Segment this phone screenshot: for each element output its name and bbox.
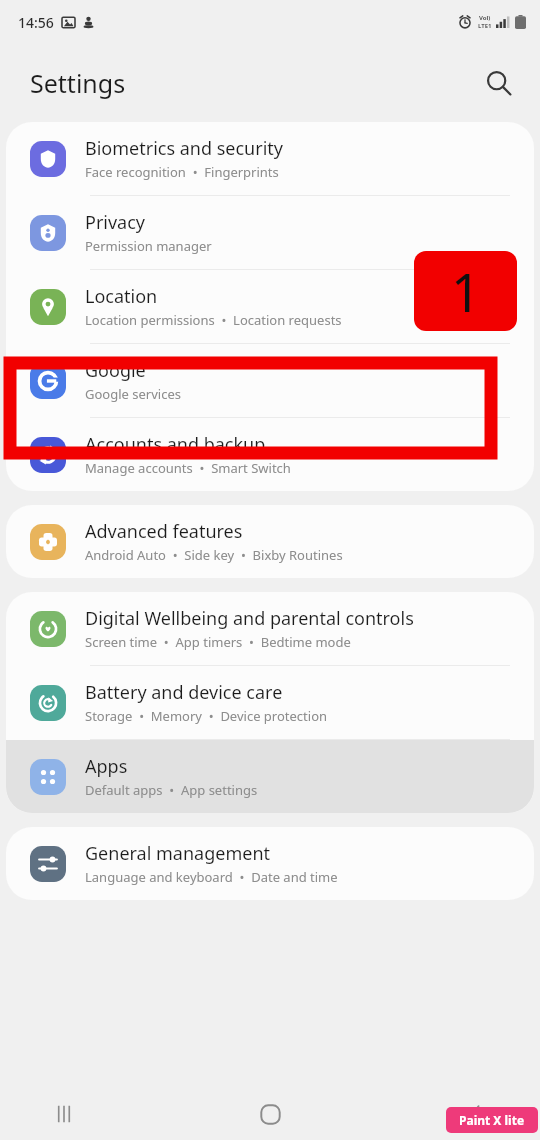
staticText: Privacy xyxy=(85,210,146,235)
button[interactable]: Recent apps xyxy=(38,1088,90,1140)
button[interactable]: Biometrics and security xyxy=(6,122,534,195)
button[interactable]: Battery and device care xyxy=(6,666,534,739)
staticText: Screen time • App timers • Bedtime mode xyxy=(85,633,351,651)
staticText: 1 xyxy=(451,256,481,327)
button[interactable]: Home xyxy=(244,1088,296,1140)
staticText: Paint X lite xyxy=(459,1112,525,1128)
staticText: Google xyxy=(85,358,146,383)
staticText: Advanced features xyxy=(85,519,243,544)
staticText: Battery and device care xyxy=(85,680,283,705)
button[interactable]: Privacy xyxy=(6,196,534,269)
button[interactable]: Accounts and backup xyxy=(6,418,534,491)
staticText: Language and keyboard • Date and time xyxy=(85,868,338,886)
staticText: Android Auto • Side key • Bixby Routines xyxy=(85,546,343,564)
staticText: Face recognition • Fingerprints xyxy=(85,163,279,181)
button[interactable]: Apps xyxy=(6,740,534,813)
staticText: Apps xyxy=(85,754,128,779)
staticText: Default apps • App settings xyxy=(85,781,258,799)
button[interactable]: Location xyxy=(6,270,534,343)
staticText: Permission manager xyxy=(85,237,212,255)
staticText: Biometrics and security xyxy=(85,136,283,161)
staticText: General management xyxy=(85,841,271,866)
staticText: 14:56 xyxy=(18,13,54,32)
button[interactable]: Google xyxy=(6,344,534,417)
button[interactable]: General management xyxy=(6,827,534,900)
staticText: Digital Wellbeing and parental controls xyxy=(85,606,414,631)
staticText: Manage accounts • Smart Switch xyxy=(85,459,291,477)
staticText: Settings xyxy=(30,66,126,100)
staticText: LTE1 xyxy=(478,22,492,30)
button[interactable]: Back xyxy=(450,1088,502,1140)
staticText: Location permissions • Location requests xyxy=(85,311,342,329)
staticText: Google services xyxy=(85,385,181,403)
button[interactable]: Digital Wellbeing and parental controls xyxy=(6,592,534,665)
button[interactable]: Search xyxy=(476,60,522,106)
staticText: Vol) xyxy=(479,14,491,22)
staticText: Accounts and backup xyxy=(85,432,266,457)
button[interactable]: Advanced features xyxy=(6,505,534,578)
staticText: Storage • Memory • Device protection xyxy=(85,707,328,725)
staticText: Location xyxy=(85,284,158,309)
